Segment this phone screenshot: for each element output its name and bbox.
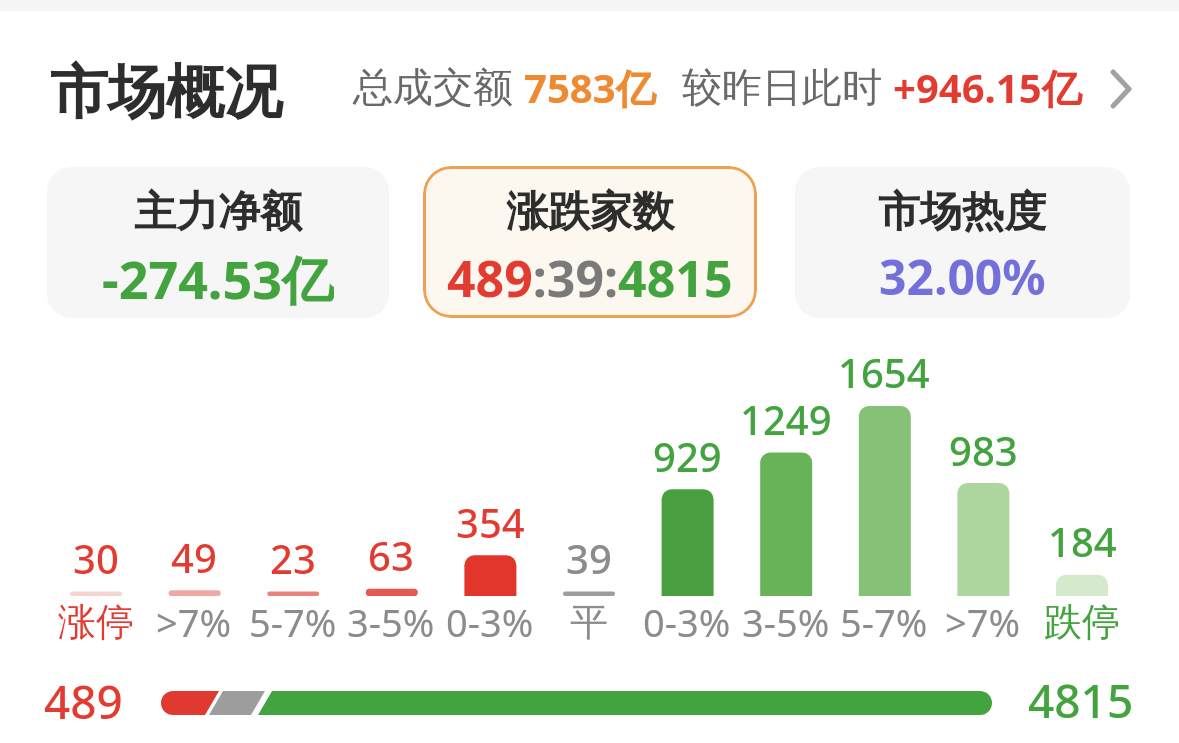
staticText: 5-7%: [249, 596, 337, 648]
staticText: 32.00%: [879, 244, 1046, 308]
staticText: 3-5%: [347, 596, 435, 648]
staticText: 市场概况: [50, 56, 282, 129]
staticText: 63: [368, 528, 414, 582]
staticText: 983: [949, 423, 1018, 477]
staticText: 1654: [838, 345, 930, 399]
staticText: 489:39:4815: [447, 244, 733, 308]
staticText: 5-7%: [840, 596, 928, 648]
staticText: 1249: [740, 392, 832, 446]
staticText: 0-3%: [643, 596, 731, 648]
staticText: 3-5%: [742, 596, 830, 648]
staticText: 49: [171, 530, 217, 584]
staticText: 4815: [1028, 669, 1134, 729]
staticText: 平: [570, 598, 608, 646]
staticText: >7%: [156, 596, 232, 648]
staticText: >7%: [945, 596, 1021, 648]
staticText: 929: [653, 429, 722, 483]
staticText: 30: [73, 531, 119, 585]
staticText: 较昨日此时: [682, 62, 882, 112]
staticText: 总成交额: [353, 62, 513, 112]
staticText: 涨停: [58, 598, 134, 646]
button[interactable]: [40, 50, 1150, 130]
button[interactable]: [47, 167, 389, 318]
staticText: 市场热度: [878, 186, 1046, 239]
staticText: 354: [456, 495, 525, 549]
staticText: 涨跌家数: [506, 186, 674, 239]
staticText: 7583亿: [524, 60, 656, 115]
staticText: 23: [270, 531, 316, 585]
staticText: 主力净额: [134, 186, 302, 239]
staticText: +946.15亿: [893, 60, 1082, 115]
staticText: 跌停: [1044, 598, 1120, 646]
staticText: 0-3%: [446, 596, 534, 648]
button[interactable]: [795, 167, 1130, 318]
staticText: -274.53亿: [102, 243, 334, 309]
staticText: 39: [566, 531, 612, 585]
staticText: 184: [1048, 514, 1117, 568]
staticText: 489: [44, 670, 123, 730]
button[interactable]: [423, 166, 757, 318]
